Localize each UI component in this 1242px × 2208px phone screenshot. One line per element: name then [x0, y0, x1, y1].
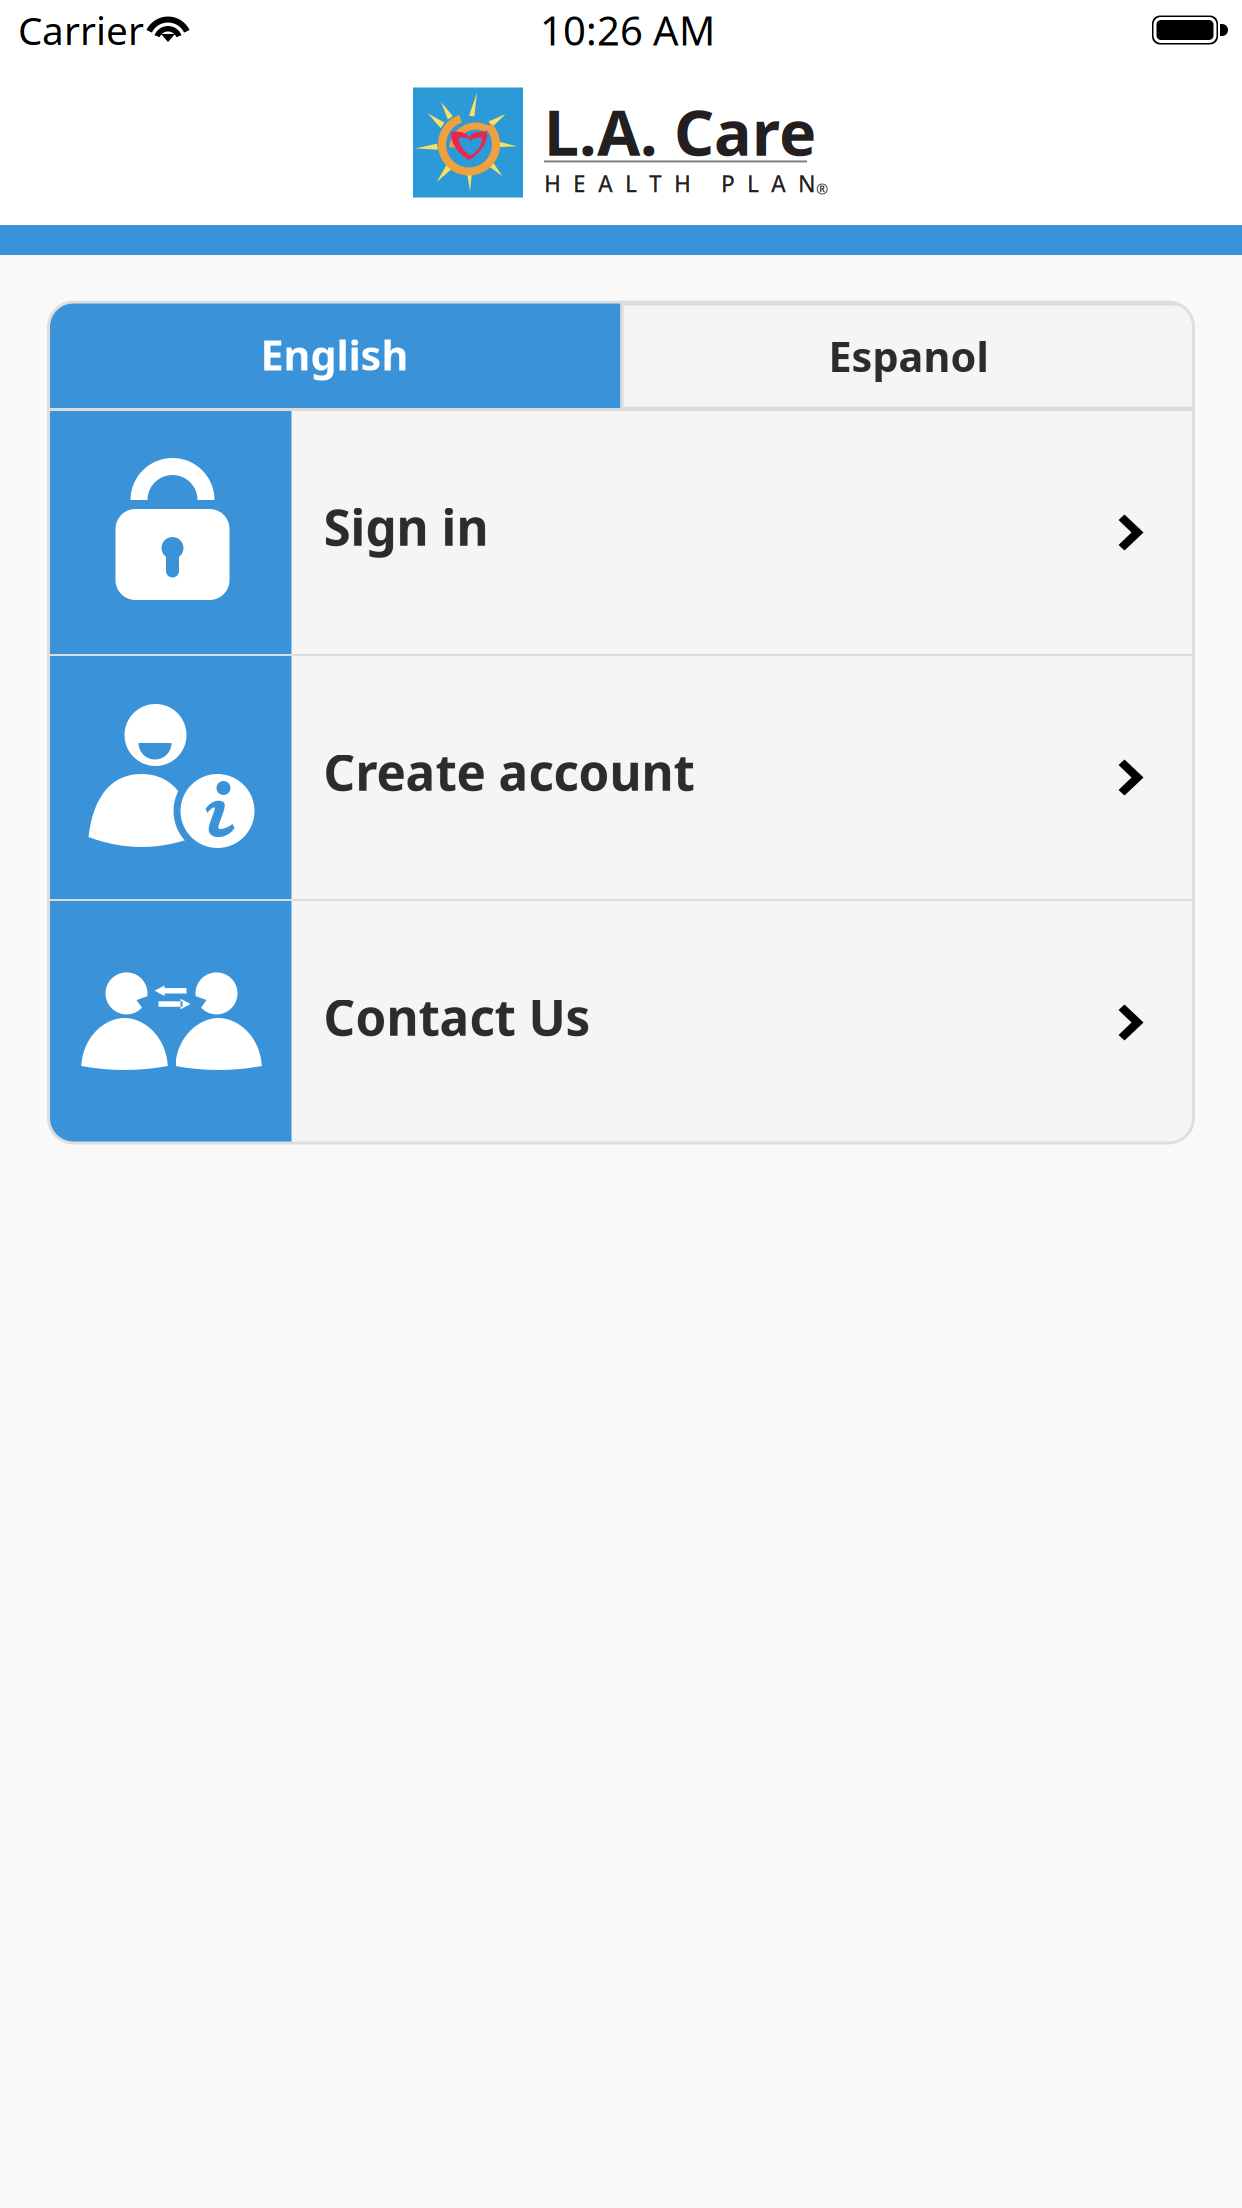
- button[interactable]: Create account: [48, 656, 1193, 899]
- staticText: Espanol: [828, 329, 988, 383]
- staticText: L.A. Care: [544, 90, 816, 173]
- staticText: H E A L T H P L A N: [544, 168, 816, 198]
- button[interactable]: Contact Us: [48, 901, 1193, 1144]
- button[interactable]: Sign in: [48, 411, 1193, 654]
- staticText: Contact Us: [323, 984, 590, 1049]
- button[interactable]: Espanol: [620, 301, 1193, 408]
- staticText: ®: [816, 179, 828, 199]
- staticText: English: [260, 327, 408, 382]
- staticText: Carrier: [18, 4, 144, 56]
- staticText: Create account: [323, 739, 694, 804]
- staticText: Sign in: [323, 494, 488, 559]
- staticText: 10:26 AM: [540, 3, 715, 56]
- button[interactable]: English: [48, 301, 620, 408]
